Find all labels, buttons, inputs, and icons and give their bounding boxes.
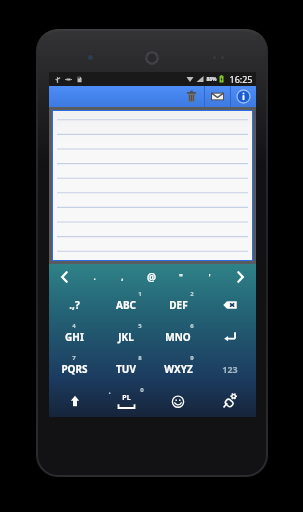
staticText: GHI (65, 330, 84, 344)
staticText: 7 (72, 354, 76, 362)
staticText: 0 (140, 386, 144, 394)
button[interactable]: " (166, 264, 195, 289)
staticText: PL (122, 393, 131, 403)
button[interactable]: WXYZ (152, 353, 204, 385)
button[interactable]: JKL (100, 321, 152, 353)
button[interactable]: Previous word (49, 264, 80, 289)
staticText: PQRS (61, 362, 88, 376)
staticText: 123 (222, 363, 238, 375)
staticText: 16:25 (229, 73, 253, 85)
button[interactable]: PQRS (49, 353, 100, 385)
staticText: WXYZ (164, 362, 193, 376)
staticText: 6 (190, 322, 194, 330)
button[interactable]: XT9 prediction (152, 385, 204, 417)
button[interactable]: ABC (100, 289, 152, 321)
button[interactable]: Backspace (204, 289, 256, 321)
staticText: JKL (118, 330, 134, 344)
staticText: 2 (190, 290, 194, 298)
staticText: " (179, 271, 183, 282)
staticText: @ (147, 270, 156, 284)
button[interactable]: @ (137, 264, 166, 289)
staticText: 88% (206, 76, 217, 83)
staticText: · (108, 387, 111, 398)
button[interactable]: Next word (224, 264, 256, 289)
staticText: , (121, 271, 124, 282)
button[interactable]: Keyboard settings (204, 385, 256, 417)
button[interactable]: Space (100, 385, 152, 417)
button[interactable]: . (80, 264, 108, 289)
button[interactable]: , (108, 264, 137, 289)
button[interactable]: DEF (152, 289, 204, 321)
button[interactable]: GHI (49, 321, 100, 353)
button[interactable]: Send as e-mail (205, 86, 230, 107)
staticText: TUV (116, 362, 136, 376)
button[interactable]: Delete note (179, 86, 204, 107)
staticText: 1 (138, 290, 142, 298)
staticText: 9 (190, 354, 194, 362)
staticText: ABC (116, 298, 136, 312)
button[interactable]: .,? (49, 289, 100, 321)
staticText: MNO (165, 330, 191, 344)
staticText: 4 (72, 322, 76, 330)
staticText: DEF (169, 298, 188, 312)
button[interactable]: MNO (152, 321, 204, 353)
button[interactable]: 123 (204, 353, 256, 385)
staticText: .,? (69, 298, 80, 312)
button[interactable]: ' (195, 264, 224, 289)
button[interactable]: TUV (100, 353, 152, 385)
staticText: 8 (138, 354, 142, 362)
staticText: . (93, 271, 96, 282)
staticText: 5 (138, 322, 142, 330)
button[interactable]: About (231, 86, 256, 107)
button[interactable]: Shift (49, 385, 100, 417)
button[interactable]: Enter (204, 321, 256, 353)
staticText: ' (208, 271, 211, 282)
